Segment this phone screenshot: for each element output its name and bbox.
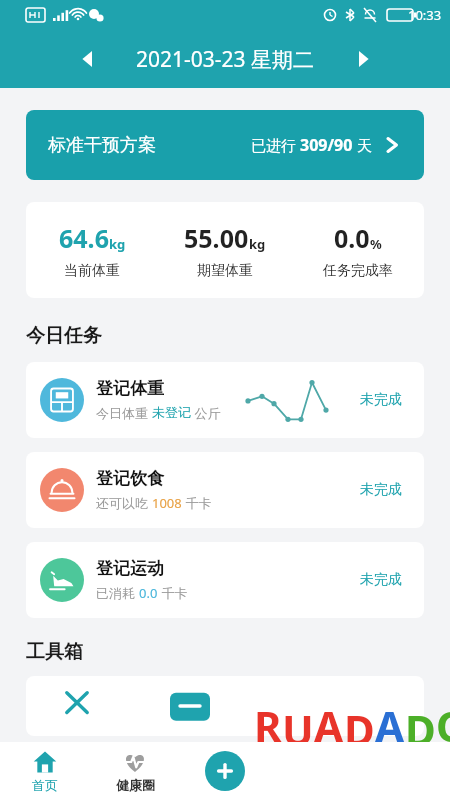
staticText: R xyxy=(254,697,282,754)
staticText: 期望体重 xyxy=(197,262,253,280)
button[interactable]: 健康圈 xyxy=(90,742,180,800)
staticText: kg xyxy=(249,235,266,253)
staticText: 工具箱 xyxy=(26,640,83,664)
staticText: 已消耗 xyxy=(96,584,139,602)
staticText: 未登记 xyxy=(152,404,191,420)
staticText: 任务完成率 xyxy=(323,262,393,280)
staticText: 未完成 xyxy=(352,391,410,409)
staticText: 登记饮食 xyxy=(96,468,164,489)
staticText: 公斤 xyxy=(191,404,221,422)
staticText: 309/90 xyxy=(300,134,353,156)
staticText: 未完成 xyxy=(352,571,410,589)
staticText: 还可以吃 xyxy=(96,494,152,512)
staticText: 今日体重 xyxy=(96,404,152,422)
staticText: 今日任务 xyxy=(26,324,102,348)
staticText: 55.00 xyxy=(184,221,249,255)
staticText: U xyxy=(282,701,314,758)
button[interactable]: 首页 xyxy=(0,742,90,800)
button[interactable]: Next day xyxy=(341,37,385,81)
staticText: 登记体重 xyxy=(96,378,164,399)
staticText: 登记运动 xyxy=(96,558,164,579)
staticText: O xyxy=(436,697,450,754)
staticText: 0.0 xyxy=(139,584,158,602)
staticText: 标准干预方案 xyxy=(48,134,156,157)
button[interactable]: 标准干预方案 xyxy=(26,110,424,180)
staticText: 首页 xyxy=(32,777,58,793)
staticText: 0.0 xyxy=(334,221,370,255)
staticText: D xyxy=(344,701,375,758)
staticText: 千卡 xyxy=(158,584,188,602)
staticText: 未完成 xyxy=(352,481,410,499)
staticText: 64.6 xyxy=(59,221,109,255)
staticText: 2021-03-23 星期二 xyxy=(136,45,315,74)
button[interactable]: Scissors tool xyxy=(60,686,94,720)
staticText: 天 xyxy=(353,135,372,155)
staticText: 健康圈 xyxy=(116,777,155,793)
staticText: D xyxy=(405,701,436,758)
staticText: kg xyxy=(109,235,126,253)
button[interactable]: Previous day xyxy=(66,37,110,81)
staticText: 已进行 xyxy=(251,135,300,155)
staticText: 当前体重 xyxy=(64,262,120,280)
staticText: 10:33 xyxy=(408,6,442,24)
button[interactable]: 登记饮食 xyxy=(26,452,424,528)
staticText: % xyxy=(370,235,382,253)
button[interactable]: Card tool xyxy=(170,688,210,728)
staticText: A xyxy=(314,697,344,754)
button[interactable]: Add xyxy=(205,751,245,791)
staticText: 1008 xyxy=(152,494,182,512)
staticText: 千卡 xyxy=(182,494,212,512)
button[interactable]: 登记体重 xyxy=(26,362,424,438)
staticText: A xyxy=(375,697,405,754)
button[interactable]: 登记运动 xyxy=(26,542,424,618)
